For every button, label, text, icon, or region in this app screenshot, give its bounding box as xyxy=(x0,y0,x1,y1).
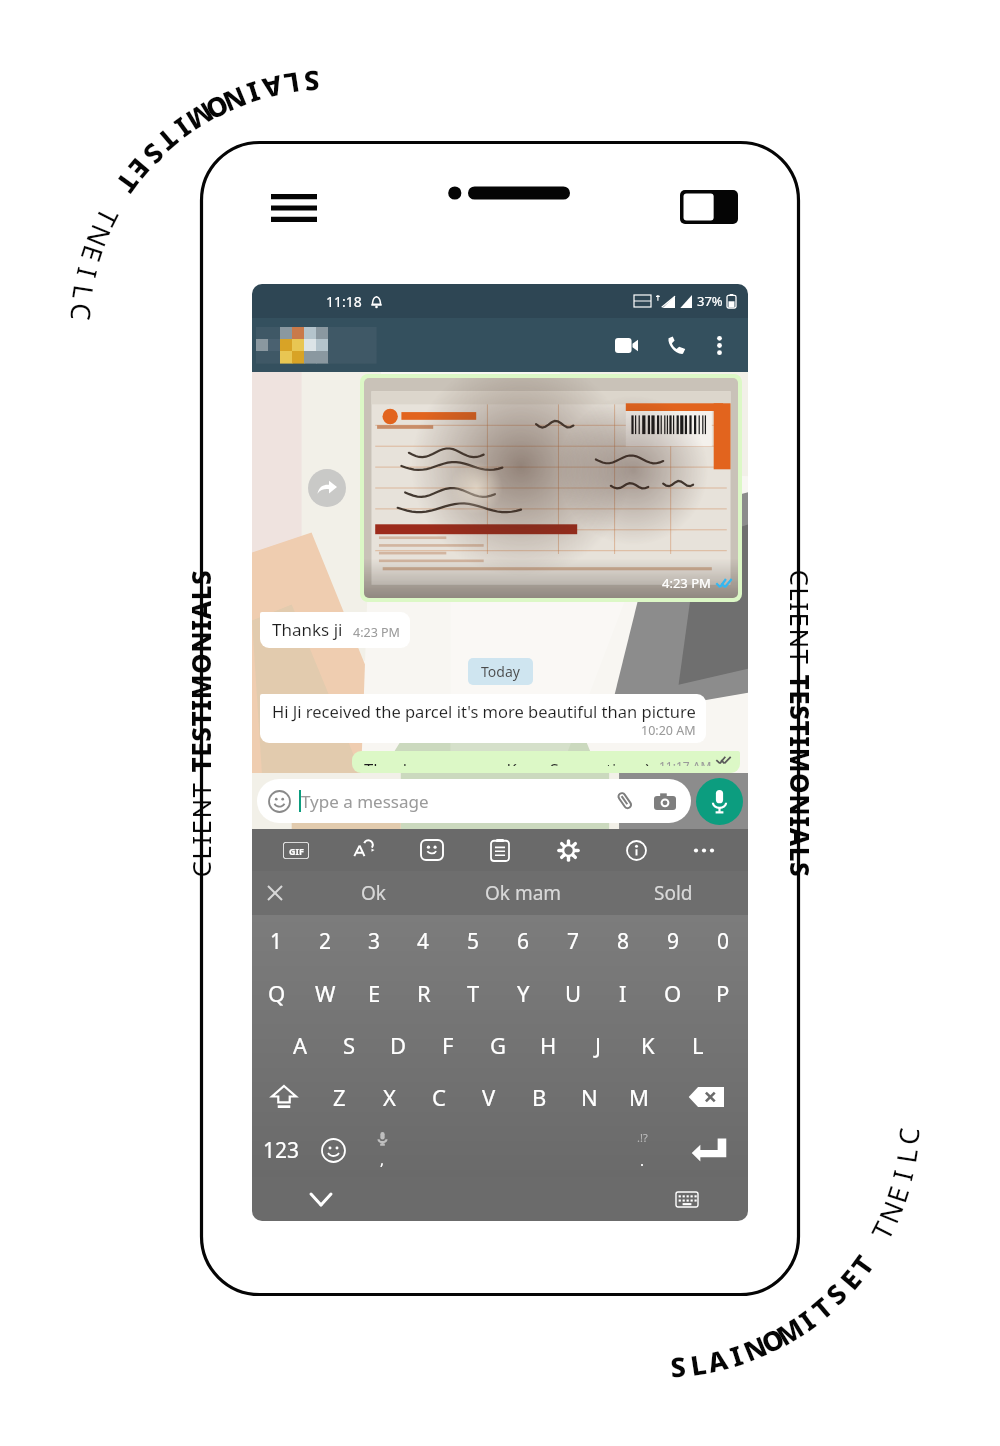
staticText: E xyxy=(877,1181,915,1207)
button[interactable]: Forward xyxy=(308,469,346,507)
button[interactable]: Emoji xyxy=(311,1123,355,1177)
button[interactable]: M xyxy=(614,1071,664,1123)
button[interactable]: K xyxy=(623,1019,673,1071)
staticText: O xyxy=(200,89,235,129)
button[interactable]: V xyxy=(464,1071,514,1123)
button[interactable]: N xyxy=(564,1071,614,1123)
button[interactable]: B xyxy=(514,1071,564,1123)
staticText: 11:17 AM xyxy=(659,758,712,766)
button[interactable]: 8 xyxy=(598,915,648,967)
button[interactable]: U xyxy=(548,967,598,1019)
button[interactable]: 0 xyxy=(698,915,748,967)
button[interactable]: Attach xyxy=(610,786,640,816)
button[interactable]: E xyxy=(350,967,399,1019)
staticText: 1 xyxy=(270,927,283,956)
button[interactable]: Camera xyxy=(650,786,680,816)
button[interactable]: Hi Ji received the parcel it's more beau… xyxy=(260,694,706,743)
button[interactable]: O xyxy=(648,967,698,1019)
button[interactable]: X xyxy=(364,1071,414,1123)
button[interactable]: 9 xyxy=(648,915,698,967)
button[interactable]: Ok xyxy=(298,871,448,915)
button[interactable]: Voice message xyxy=(696,778,743,825)
button[interactable]: 3 xyxy=(350,915,399,967)
button[interactable]: Video call xyxy=(606,325,646,365)
button[interactable]: A xyxy=(276,1019,325,1071)
button[interactable]: Translate xyxy=(330,829,398,871)
button[interactable]: 6 xyxy=(498,915,548,967)
button[interactable]: Hide keyboard xyxy=(304,1182,338,1216)
button[interactable]: 4 xyxy=(399,915,448,967)
staticText: U xyxy=(565,978,582,1008)
button[interactable]: Q xyxy=(252,967,301,1019)
button[interactable]: Clipboard xyxy=(466,829,534,871)
button[interactable]: Settings xyxy=(534,829,602,871)
staticText: N xyxy=(869,1195,909,1228)
button[interactable]: L xyxy=(673,1019,723,1071)
button[interactable]: Stickers xyxy=(398,829,466,871)
button[interactable]: 1 xyxy=(252,915,301,967)
staticText: L xyxy=(281,67,302,103)
button[interactable]: Info xyxy=(602,829,670,871)
staticText: Sold xyxy=(654,880,693,906)
button[interactable]: Voice call xyxy=(656,325,696,365)
button[interactable]: 5 xyxy=(448,915,498,967)
staticText: Ok mam xyxy=(485,880,562,906)
button[interactable]: More xyxy=(670,829,738,871)
button[interactable]: GIF xyxy=(262,829,330,871)
button[interactable]: Z xyxy=(315,1071,364,1123)
staticText: 4:23 PM xyxy=(353,624,400,641)
staticText: 6 xyxy=(517,927,530,956)
staticText: H xyxy=(540,1030,557,1060)
button[interactable]: Backspace xyxy=(664,1071,748,1123)
button[interactable]: G xyxy=(473,1019,523,1071)
button[interactable]: Type a message xyxy=(257,779,691,823)
staticText: N xyxy=(218,81,253,121)
staticText: F xyxy=(442,1030,454,1060)
button[interactable]: Voice input xyxy=(355,1123,409,1177)
button[interactable]: I xyxy=(598,967,648,1019)
button[interactable]: Y xyxy=(498,967,548,1019)
button[interactable]: 4:23 PM xyxy=(364,378,738,598)
staticText: X xyxy=(383,1082,396,1112)
button[interactable]: P xyxy=(698,967,748,1019)
button[interactable]: C xyxy=(414,1071,464,1123)
button[interactable]: Menu xyxy=(262,182,326,234)
button[interactable]: Switch keyboard xyxy=(670,1182,704,1216)
button[interactable]: Battery xyxy=(680,190,738,224)
button[interactable]: H xyxy=(523,1019,573,1071)
staticText: 11:18 xyxy=(326,292,362,311)
staticText: T xyxy=(842,1247,879,1280)
staticText: 37% xyxy=(697,292,723,310)
button[interactable]: J xyxy=(573,1019,623,1071)
button[interactable]: 7 xyxy=(548,915,598,967)
staticText: GIF xyxy=(289,845,304,857)
button[interactable]: R xyxy=(399,967,448,1019)
button[interactable]: Thanks ji xyxy=(260,612,410,648)
button[interactable]: .!? xyxy=(615,1123,669,1177)
staticText: C xyxy=(65,302,101,322)
staticText: Type a message xyxy=(301,790,429,813)
button[interactable]: W xyxy=(301,967,350,1019)
staticText: 10:20 AM xyxy=(641,722,696,739)
button[interactable]: S xyxy=(325,1019,374,1071)
staticText: C xyxy=(432,1082,446,1112)
button[interactable]: Expand suggestions xyxy=(252,871,298,915)
button[interactable]: Enter xyxy=(669,1123,748,1177)
button[interactable]: Thank you mam... Keep Supporting :) xyxy=(352,751,740,773)
staticText: 8 xyxy=(617,927,630,956)
button[interactable]: D xyxy=(374,1019,423,1071)
staticText: Thanks ji xyxy=(272,618,343,641)
staticText: B xyxy=(532,1082,547,1112)
button[interactable]: F xyxy=(423,1019,473,1071)
button[interactable]: Sold xyxy=(598,871,748,915)
button[interactable]: 2 xyxy=(301,915,350,967)
button[interactable]: More options xyxy=(702,328,736,362)
staticText: Z xyxy=(333,1082,346,1112)
button[interactable]: Shift xyxy=(252,1071,315,1123)
button[interactable]: 123 xyxy=(252,1123,311,1177)
button[interactable]: T xyxy=(448,967,498,1019)
staticText: I xyxy=(71,264,107,282)
button[interactable]: Ok mam xyxy=(448,871,598,915)
staticText: T xyxy=(110,167,147,200)
